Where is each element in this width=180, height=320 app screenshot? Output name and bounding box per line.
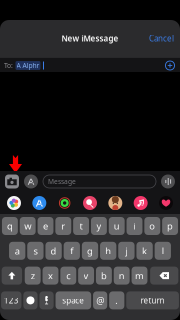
- button[interactable]: Cancel: [143, 28, 180, 49]
- button[interactable]: App Store: [32, 196, 46, 210]
- staticText: Cancel: [149, 33, 174, 44]
- button[interactable]: Images: [83, 196, 97, 210]
- staticText: t: [80, 220, 83, 232]
- button[interactable]: x: [42, 267, 58, 285]
- button[interactable]: Add contact: [163, 57, 177, 73]
- button[interactable]: b: [96, 267, 112, 285]
- staticText: c: [66, 269, 70, 282]
- button[interactable]: Delete: [150, 267, 178, 285]
- staticText: y: [96, 220, 101, 232]
- button[interactable]: q: [2, 217, 18, 235]
- staticText: Message: [48, 177, 76, 186]
- button[interactable]: m: [131, 267, 147, 285]
- button[interactable]: p: [162, 217, 178, 235]
- staticText: l: [162, 245, 164, 257]
- button[interactable]: @: [93, 291, 107, 309]
- staticText: u: [114, 220, 120, 232]
- staticText: m: [135, 269, 144, 282]
- button[interactable]: Camera: [5, 174, 19, 188]
- staticText: v: [84, 269, 89, 282]
- button[interactable]: f: [64, 242, 80, 260]
- staticText: r: [61, 220, 65, 232]
- staticText: g: [87, 245, 93, 257]
- button[interactable]: o: [144, 217, 160, 235]
- staticText: To:: [4, 61, 13, 70]
- button[interactable]: v: [78, 267, 94, 285]
- staticText: x: [48, 269, 53, 282]
- button[interactable]: return: [126, 291, 179, 309]
- button[interactable]: k: [136, 242, 153, 260]
- staticText: @: [96, 294, 104, 307]
- staticText: z: [31, 269, 35, 282]
- button[interactable]: t: [73, 217, 89, 235]
- staticText: j: [125, 245, 127, 257]
- staticText: o: [149, 220, 155, 232]
- button[interactable]: Emoji: [23, 291, 37, 309]
- button[interactable]: Shift: [2, 267, 22, 285]
- button[interactable]: a: [9, 242, 25, 260]
- button[interactable]: c: [60, 267, 76, 285]
- button[interactable]: Music: [134, 196, 148, 210]
- button[interactable]: Digital Touch: [159, 196, 173, 210]
- staticText: .: [115, 294, 118, 307]
- staticText: p: [167, 220, 173, 232]
- button[interactable]: s: [27, 242, 43, 260]
- button[interactable]: Fitness: [58, 196, 72, 210]
- staticText: b: [101, 269, 107, 282]
- staticText: space: [62, 295, 84, 306]
- staticText: s: [33, 245, 37, 257]
- button[interactable]: l: [155, 242, 171, 260]
- button[interactable]: h: [100, 242, 116, 260]
- staticText: New iMessage: [61, 33, 118, 44]
- staticText: f: [70, 245, 73, 257]
- staticText: h: [105, 245, 111, 257]
- button[interactable]: i: [126, 217, 142, 235]
- button[interactable]: u: [109, 217, 125, 235]
- button[interactable]: .: [109, 291, 124, 309]
- button[interactable]: j: [118, 242, 134, 260]
- staticText: q: [7, 220, 13, 232]
- button[interactable]: w: [20, 217, 36, 235]
- button[interactable]: 123: [1, 291, 21, 309]
- button[interactable]: r: [55, 217, 71, 235]
- staticText: d: [51, 245, 57, 257]
- button[interactable]: Apps: [24, 174, 38, 188]
- staticText: i: [133, 220, 135, 232]
- button[interactable]: d: [45, 242, 62, 260]
- staticText: k: [142, 245, 147, 257]
- staticText: A Alphr: [16, 61, 39, 70]
- staticText: e: [43, 220, 48, 232]
- button[interactable]: z: [25, 267, 41, 285]
- button[interactable]: space: [55, 291, 91, 309]
- button[interactable]: n: [114, 267, 130, 285]
- button[interactable]: Record audio: [161, 174, 175, 188]
- button[interactable]: Message: [43, 175, 156, 188]
- button[interactable]: g: [82, 242, 98, 260]
- button[interactable]: Photos: [7, 196, 21, 210]
- button[interactable]: Dictate: [39, 291, 54, 309]
- staticText: n: [119, 269, 125, 282]
- button[interactable]: y: [91, 217, 107, 235]
- staticText: w: [24, 220, 31, 232]
- staticText: 123: [4, 295, 19, 306]
- staticText: return: [141, 295, 165, 306]
- button[interactable]: Memoji: [108, 196, 122, 210]
- button[interactable]: e: [37, 217, 53, 235]
- staticText: a: [15, 245, 20, 257]
